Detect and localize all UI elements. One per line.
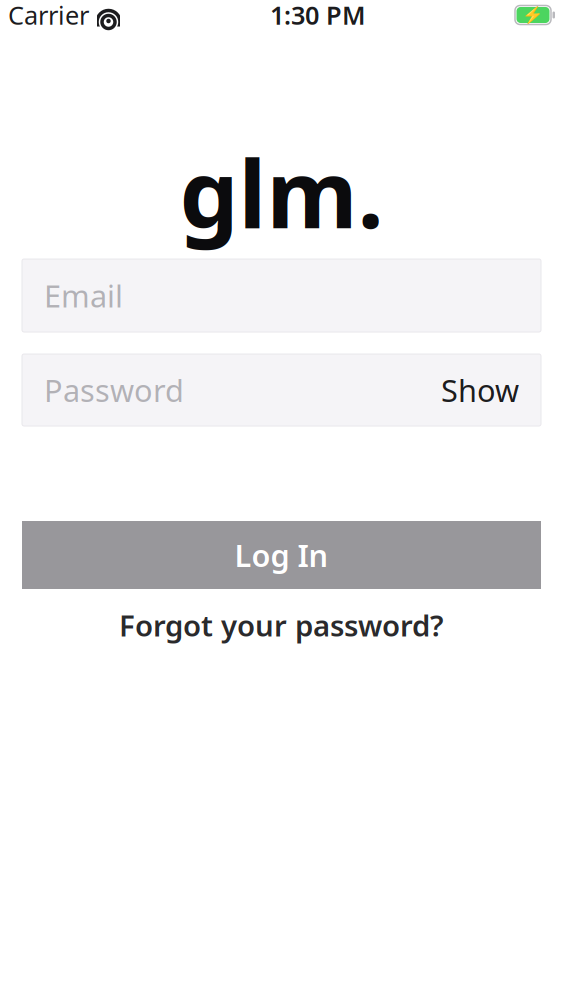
staticText: Show [441,370,519,410]
staticText: Carrier [8,0,89,32]
staticText: ⚡ [522,5,544,25]
staticText: Log In [234,535,328,575]
button[interactable]: Email [22,259,541,332]
button[interactable]: Show [441,370,519,410]
staticText: Password [44,370,184,410]
staticText: Email [44,275,123,316]
button[interactable]: Log In [22,521,541,589]
button[interactable]: Forgot your password? [22,607,541,643]
staticText: 1:30 PM [270,0,366,32]
staticText: Forgot your password? [119,605,444,644]
staticText: glm. [179,130,383,254]
